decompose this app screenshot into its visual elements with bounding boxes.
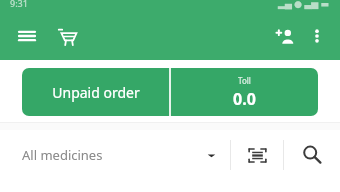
button[interactable]: All medicines (0, 130, 230, 180)
staticText: 0.0 (233, 88, 256, 110)
button[interactable]: Menu (10, 19, 44, 53)
button[interactable]: Cart (50, 19, 84, 53)
button[interactable]: Scan barcode (231, 130, 283, 180)
staticText: 9:31 (10, 0, 28, 9)
button[interactable]: Unpaid order (22, 68, 169, 116)
button[interactable]: More options (302, 21, 332, 51)
staticText: Unpaid order (52, 83, 140, 102)
staticText: Toll (238, 75, 251, 86)
staticText: ▂▄ ● ▃▅ ▬ (278, 0, 330, 9)
button[interactable]: Add customer (268, 19, 302, 53)
staticText: All medicines (22, 146, 103, 164)
button[interactable]: Toll (171, 68, 318, 116)
button[interactable]: Search (284, 130, 340, 180)
